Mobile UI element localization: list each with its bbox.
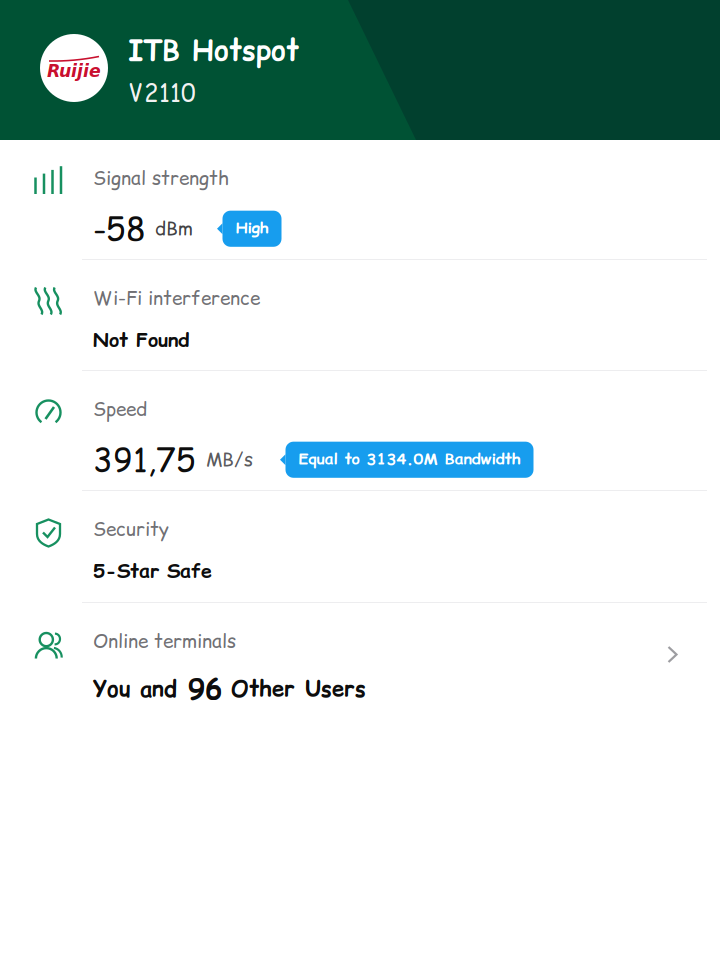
- staticText: dBm: [155, 216, 193, 242]
- button[interactable]: Online terminals: [0, 603, 720, 715]
- staticText: Ruijie: [47, 61, 101, 81]
- staticText: Equal to 3134.0M Bandwidth: [298, 448, 520, 470]
- staticText: Other Users: [231, 674, 366, 704]
- staticText: Online terminals: [93, 628, 236, 654]
- staticText: High: [235, 217, 268, 239]
- staticText: MB/s: [206, 447, 253, 473]
- staticText: Signal strength: [93, 165, 229, 191]
- staticText: You and: [93, 674, 177, 704]
- staticText: ITB Hotspot: [128, 31, 299, 70]
- staticText: Wi-Fi interference: [93, 285, 260, 311]
- staticText: 391,75: [93, 437, 196, 482]
- staticText: 96: [188, 669, 222, 708]
- staticText: Security: [93, 516, 169, 542]
- staticText: Speed: [93, 396, 147, 422]
- staticText: Not Found: [93, 326, 189, 354]
- staticText: -58: [93, 206, 146, 251]
- staticText: V2110: [128, 76, 196, 109]
- staticText: 5-Star Safe: [93, 557, 212, 585]
